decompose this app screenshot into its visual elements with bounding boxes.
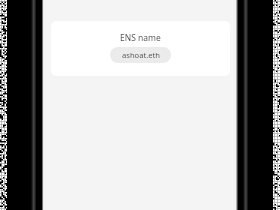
staticText: ENS name	[120, 32, 161, 44]
staticText: ashoat.eth	[122, 50, 160, 60]
button[interactable]: ashoat.eth	[110, 47, 171, 63]
